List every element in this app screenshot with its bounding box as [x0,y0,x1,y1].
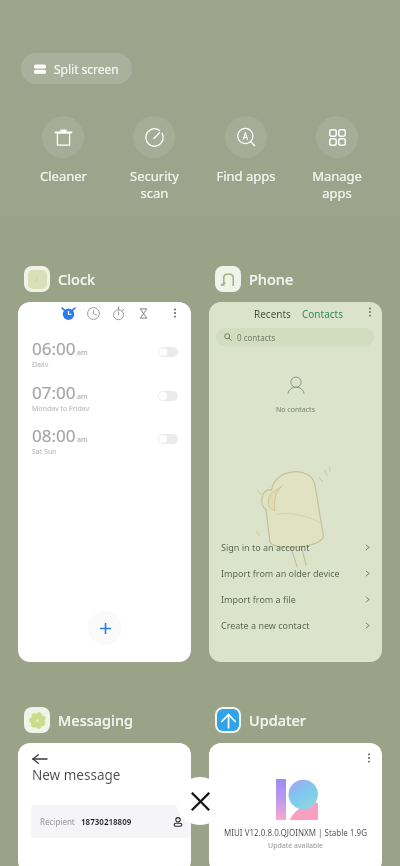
staticText: Messaging [58,710,134,730]
staticText: am [77,392,88,402]
staticText: Import from an older device [221,567,340,579]
button[interactable]: 08:00 [32,424,178,454]
staticText: Security scan [130,167,179,202]
staticText: Recipient [40,816,75,827]
button[interactable]: Toggle alarm [158,434,178,444]
button[interactable]: Alarm [62,307,75,320]
staticText: Manage apps [312,167,362,202]
button[interactable]: 06:00 [32,337,178,367]
button[interactable]: Recents [209,302,382,662]
button[interactable]: More options [169,307,181,319]
staticText: Monday to Friday [32,404,90,411]
staticText: Phone [249,269,294,289]
button[interactable]: Toggle alarm [158,347,178,357]
staticText: am [77,435,88,445]
staticText: 18730218809 [81,816,132,827]
button[interactable]: Close [176,777,224,825]
staticText: Daily [32,360,49,367]
button[interactable]: Import from a file [209,586,382,612]
button[interactable]: Import from an older device [209,560,382,586]
staticText: Sign in to an account [221,541,310,553]
button[interactable]: World clock [87,307,100,320]
staticText: New message [32,766,121,784]
staticText: Clock [58,269,96,289]
staticText: Recents [254,307,291,321]
button[interactable]: Timer [137,307,150,320]
staticText: Updater [249,710,306,730]
button[interactable]: More options [364,306,376,318]
staticText: Sat Sun [32,447,57,454]
button[interactable]: Sign in to an account [209,534,382,560]
staticText: 06:00 [32,337,76,360]
button[interactable]: Updater [215,707,306,733]
staticText: 07:00 [32,381,76,404]
button[interactable]: Stopwatch [112,307,125,320]
button[interactable]: Clock [24,266,96,292]
button[interactable]: Manage apps [293,116,381,202]
button[interactable]: Security scan [110,116,198,202]
button[interactable]: Recipient [31,805,191,838]
other: Pick contact [173,817,183,827]
button[interactable]: Cleaner [19,116,107,185]
button[interactable]: Toggle alarm [158,391,178,401]
staticText: Import from a file [221,593,296,605]
staticText: Cleaner [40,167,87,185]
button[interactable]: 0 contacts [216,328,374,346]
staticText: 0 contacts [237,332,276,343]
button[interactable]: Create a new contact [209,612,382,638]
button[interactable]: Recents [254,307,291,321]
button[interactable]: 07:00 [32,381,178,411]
staticText: No contacts [276,405,315,415]
button[interactable]: Split screen [21,53,132,84]
staticText: Find apps [216,167,276,185]
button[interactable]: Back [18,743,191,866]
button[interactable]: Messaging [24,707,134,733]
staticText: Contacts [302,307,343,321]
button[interactable]: More options [209,743,382,866]
staticText: am [77,348,88,358]
button[interactable]: Back [33,752,47,766]
button[interactable]: Contacts [302,307,343,321]
button[interactable]: Phone [215,266,294,292]
staticText: MIUI V12.0.8.0.QJOINXM | Stable 1.9G [209,827,382,838]
staticText: Create a new contact [221,619,310,631]
button[interactable]: More options [363,752,375,764]
button[interactable]: Alarm [18,302,191,662]
staticText: 08:00 [32,424,76,447]
staticText: Update available [209,841,382,851]
button[interactable]: Find apps [202,116,290,185]
staticText: Split screen [54,61,119,77]
button[interactable]: Add alarm [88,611,122,645]
